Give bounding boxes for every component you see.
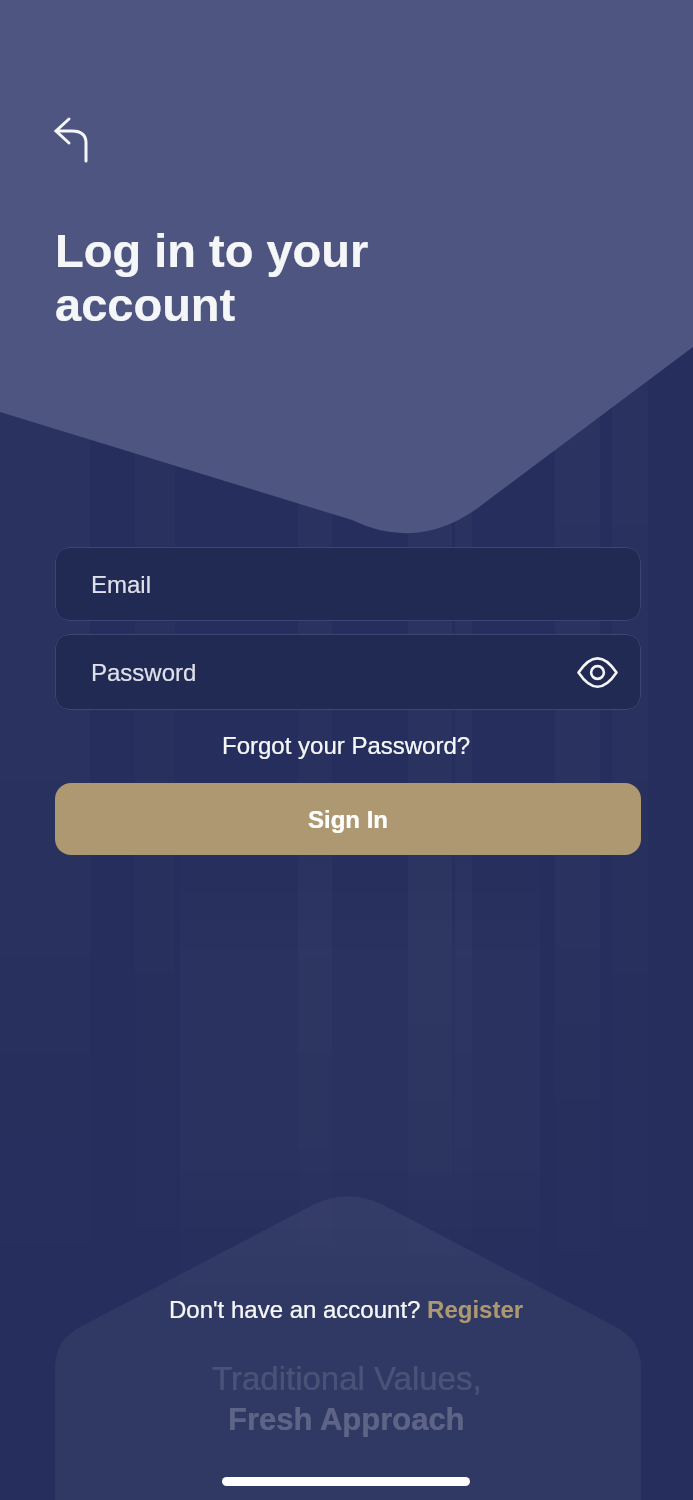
button[interactable]: Forgot your Password? xyxy=(222,732,471,759)
staticText: Password xyxy=(91,659,197,686)
button[interactable]: Email xyxy=(55,547,641,621)
button[interactable]: Don't have an account? Register xyxy=(169,1296,524,1323)
button[interactable] xyxy=(573,648,621,696)
button[interactable] xyxy=(41,113,95,167)
staticText: Fresh Approach xyxy=(228,1402,465,1437)
button[interactable]: Sign In xyxy=(55,783,641,855)
staticText: Sign In xyxy=(308,806,388,833)
staticText: Traditional Values, xyxy=(212,1360,482,1397)
staticText: Email xyxy=(91,571,152,598)
button[interactable]: Password xyxy=(55,634,641,710)
staticText: Log in to your account xyxy=(55,224,369,331)
